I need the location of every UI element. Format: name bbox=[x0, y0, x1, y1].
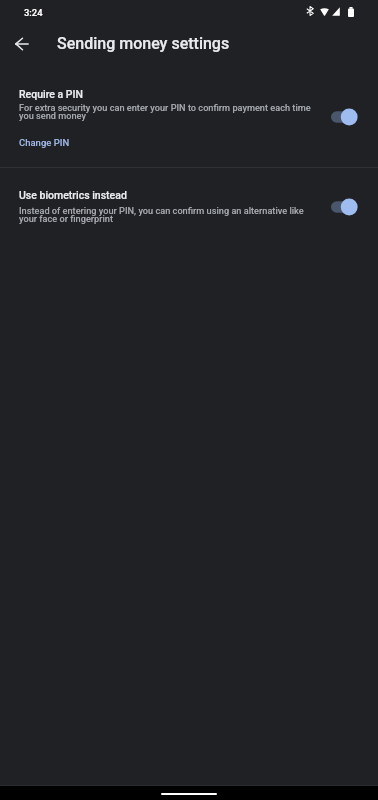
button[interactable]: Use biometrics instead bbox=[0, 189, 378, 235]
staticText: For extra security you can enter your PI… bbox=[19, 102, 322, 122]
staticText: Instead of entering your PIN, you can co… bbox=[19, 205, 322, 225]
staticText: 3:24 bbox=[24, 7, 43, 18]
staticText: Use biometrics instead bbox=[19, 189, 127, 201]
staticText: Sending money settings bbox=[57, 34, 230, 53]
button[interactable]: Change PIN bbox=[19, 137, 70, 148]
button[interactable]: Back bbox=[5, 26, 41, 62]
button[interactable]: Toggle bbox=[331, 106, 367, 128]
button[interactable]: Toggle bbox=[331, 196, 367, 218]
button[interactable]: Require a PIN bbox=[0, 88, 378, 158]
staticText: Require a PIN bbox=[19, 88, 83, 100]
